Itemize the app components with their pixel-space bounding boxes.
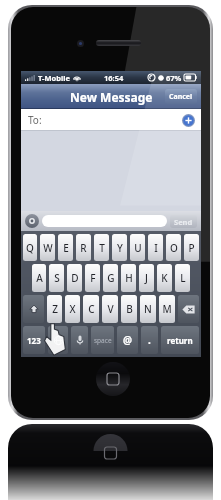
- button[interactable]: .: [141, 326, 158, 354]
- button[interactable]: Backspace: [178, 295, 199, 323]
- staticText: L: [180, 271, 186, 285]
- staticText: New Message: [70, 89, 153, 105]
- button[interactable]: B: [121, 295, 137, 323]
- staticText: W: [43, 241, 53, 255]
- button[interactable]: Attach media: [25, 214, 39, 228]
- button[interactable]: T: [94, 234, 109, 261]
- staticText: M: [162, 302, 172, 316]
- button[interactable]: space: [91, 326, 114, 354]
- staticText: X: [69, 302, 76, 316]
- staticText: G: [107, 271, 115, 285]
- button[interactable]: [42, 215, 167, 227]
- staticText: 67%: [166, 73, 182, 83]
- button[interactable]: A: [32, 264, 46, 292]
- button[interactable]: D: [67, 264, 82, 292]
- button[interactable]: Y: [112, 234, 127, 261]
- staticText: O: [170, 241, 178, 255]
- button[interactable]: P: [184, 234, 199, 261]
- staticText: H: [125, 271, 133, 285]
- button[interactable]: To:: [21, 109, 201, 131]
- button[interactable]: J: [139, 264, 154, 292]
- button[interactable]: S: [49, 264, 64, 292]
- staticText: To:: [28, 113, 42, 127]
- staticText: T-Mobile: [38, 73, 70, 83]
- staticText: I: [154, 241, 158, 255]
- button[interactable]: X: [65, 295, 80, 323]
- staticText: Cancel: [169, 92, 193, 102]
- button[interactable]: Shift: [23, 295, 44, 323]
- staticText: Send: [174, 217, 193, 227]
- staticText: 123: [27, 335, 41, 346]
- button[interactable]: G: [103, 264, 118, 292]
- button[interactable]: Emoji: [48, 326, 68, 354]
- button[interactable]: Add contact: [182, 114, 195, 127]
- staticText: Q: [26, 241, 34, 255]
- staticText: Y: [117, 241, 123, 255]
- button[interactable]: Cancel: [165, 89, 197, 104]
- staticText: R: [80, 241, 87, 255]
- staticText: F: [90, 271, 96, 285]
- button[interactable]: F: [85, 264, 100, 292]
- staticText: space: [94, 336, 112, 345]
- staticText: J: [145, 271, 148, 285]
- button[interactable]: Home: [96, 362, 130, 396]
- staticText: N: [144, 302, 152, 316]
- staticText: A: [36, 271, 43, 285]
- button[interactable]: V: [102, 295, 118, 323]
- staticText: K: [161, 271, 168, 285]
- staticText: .: [148, 333, 151, 347]
- button[interactable]: K: [157, 264, 172, 292]
- button[interactable]: O: [166, 234, 181, 261]
- button[interactable]: N: [140, 295, 156, 323]
- staticText: P: [188, 241, 195, 255]
- button[interactable]: E: [58, 234, 73, 261]
- button[interactable]: Z: [47, 295, 62, 323]
- staticText: B: [126, 302, 133, 316]
- button[interactable]: L: [175, 264, 190, 292]
- button[interactable]: C: [83, 295, 99, 323]
- button[interactable]: M: [159, 295, 175, 323]
- button[interactable]: W: [40, 234, 55, 261]
- staticText: V: [107, 302, 114, 316]
- button[interactable]: 123: [23, 326, 45, 354]
- button[interactable]: U: [130, 234, 145, 261]
- button[interactable]: Q: [23, 234, 37, 261]
- staticText: return: [167, 335, 193, 346]
- staticText: C: [88, 302, 95, 316]
- button[interactable]: @: [117, 326, 138, 354]
- button[interactable]: R: [76, 234, 91, 261]
- staticText: U: [134, 241, 142, 255]
- staticText: @: [123, 333, 132, 347]
- staticText: 16:54: [104, 73, 124, 83]
- button[interactable]: return: [161, 326, 199, 354]
- button[interactable]: Dictate: [71, 326, 88, 354]
- staticText: E: [63, 241, 69, 255]
- button[interactable]: I: [148, 234, 163, 261]
- staticText: T: [99, 241, 105, 255]
- button[interactable]: H: [121, 264, 136, 292]
- staticText: S: [54, 271, 60, 285]
- staticText: D: [71, 271, 79, 285]
- button[interactable]: Send: [170, 215, 197, 228]
- staticText: Z: [52, 302, 58, 316]
